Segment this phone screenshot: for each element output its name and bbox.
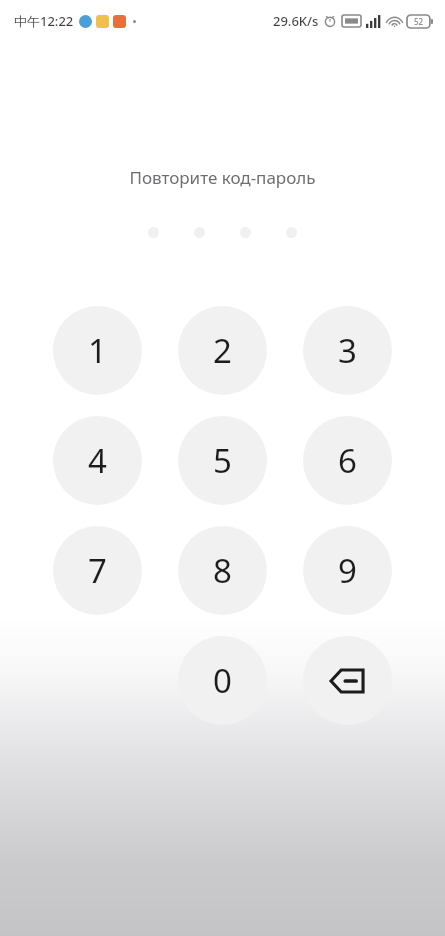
button[interactable]: 0 <box>178 636 267 725</box>
staticText: 8 <box>213 548 232 593</box>
button[interactable]: 2 <box>178 306 267 395</box>
staticText: 5 <box>213 438 232 483</box>
button[interactable]: 5 <box>178 416 267 505</box>
button[interactable]: Backspace <box>303 636 392 725</box>
button[interactable]: 9 <box>303 526 392 615</box>
staticText: Повторите код-пароль <box>0 166 445 189</box>
staticText: 0 <box>213 658 232 703</box>
staticText: 52 <box>414 16 424 27</box>
staticText: 4 <box>88 438 107 483</box>
staticText: 2 <box>213 328 232 373</box>
staticText: 9 <box>338 548 357 593</box>
staticText: 29.6K/s <box>273 12 319 30</box>
staticText: 中午12:22 <box>14 12 74 30</box>
staticText: 6 <box>338 438 357 483</box>
button[interactable]: 3 <box>303 306 392 395</box>
button[interactable]: 8 <box>178 526 267 615</box>
button[interactable]: 4 <box>53 416 142 505</box>
button[interactable]: 1 <box>53 306 142 395</box>
button[interactable]: 7 <box>53 526 142 615</box>
button[interactable]: 6 <box>303 416 392 505</box>
staticText: 3 <box>338 328 357 373</box>
staticText: 1 <box>88 328 107 373</box>
staticText: 7 <box>88 548 107 593</box>
